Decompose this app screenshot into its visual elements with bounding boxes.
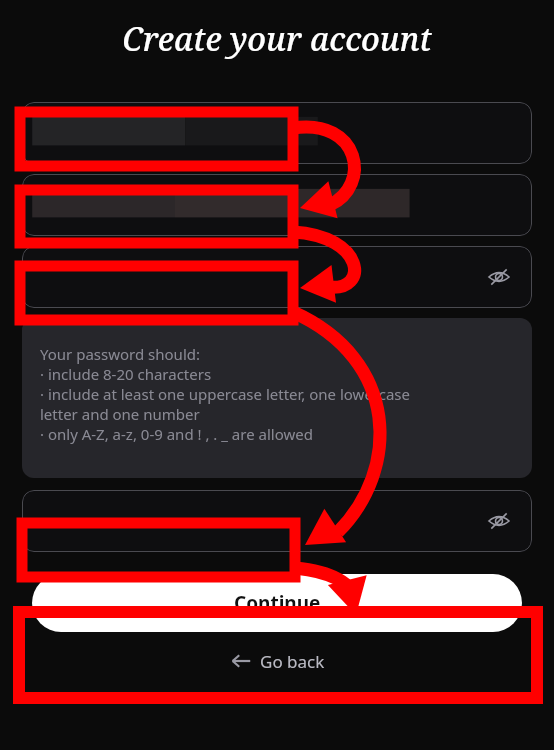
button[interactable] [22,174,532,236]
button[interactable]: Go back [0,644,554,678]
staticText: · include at least one uppercase letter,… [40,384,410,404]
staticText: Continue [234,590,321,616]
staticText: letter and one number [40,404,200,424]
button[interactable]: Show password [22,490,532,552]
staticText: Go back [260,650,325,673]
staticText: · include 8-20 characters [40,364,212,384]
staticText: Create your account [122,17,432,61]
staticText: · only A-Z, a-z, 0-9 and ! , . _ are all… [40,424,313,444]
staticText: Your password should: [40,344,200,364]
button[interactable]: Show password [22,246,532,308]
button[interactable]: Continue [32,574,522,632]
button[interactable] [22,102,532,164]
button[interactable]: Show password [482,260,516,294]
button[interactable]: Show password [482,504,516,538]
